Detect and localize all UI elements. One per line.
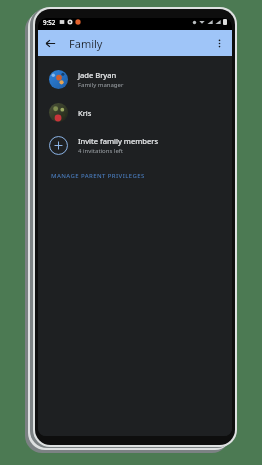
button[interactable]: Jade Bryan — [38, 63, 232, 96]
staticText: Kris — [78, 108, 92, 118]
staticText: Invite family members — [78, 136, 159, 146]
staticText: 9:52 — [43, 18, 56, 26]
staticText: MANAGE PARENT PRIVILEGES — [51, 172, 145, 180]
staticText: Family — [69, 36, 103, 51]
button[interactable]: Kris — [38, 96, 232, 129]
staticText: Family manager — [78, 81, 124, 89]
button[interactable]: More options — [207, 31, 231, 55]
button[interactable]: Invite family members — [38, 129, 232, 162]
staticText: 4 invitations left — [78, 147, 124, 155]
staticText: Jade Bryan — [78, 70, 117, 80]
button[interactable]: Back — [38, 31, 62, 55]
button[interactable]: MANAGE PARENT PRIVILEGES — [38, 167, 232, 185]
